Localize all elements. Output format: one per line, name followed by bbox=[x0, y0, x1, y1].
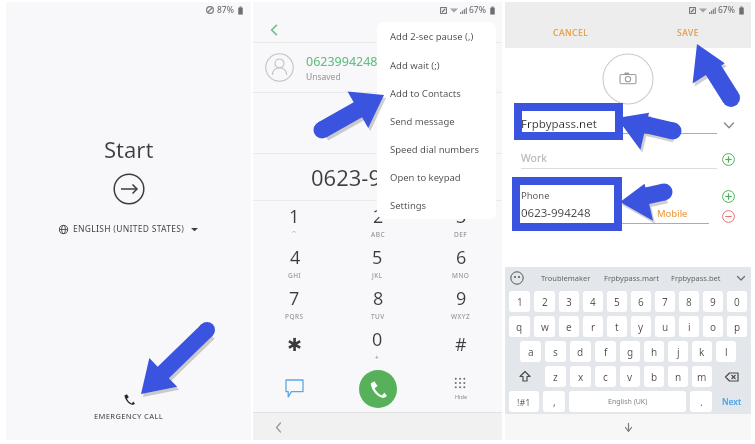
button[interactable]: Open to keypad bbox=[377, 163, 496, 191]
button[interactable]: u bbox=[655, 316, 675, 337]
staticText: 8 bbox=[686, 295, 692, 309]
button[interactable]: Expand bbox=[719, 115, 739, 135]
button[interactable]: !#1 bbox=[509, 391, 539, 412]
button[interactable]: e bbox=[559, 316, 579, 337]
button[interactable]: o bbox=[703, 316, 723, 337]
button[interactable]: s bbox=[545, 341, 566, 362]
button[interactable]: r bbox=[583, 316, 603, 337]
button[interactable]: 0 bbox=[727, 291, 747, 312]
button[interactable]: y bbox=[631, 316, 651, 337]
staticText: q bbox=[516, 320, 523, 334]
button[interactable]: 2 bbox=[336, 201, 419, 242]
button[interactable]: l bbox=[716, 341, 736, 362]
button[interactable]: # bbox=[419, 324, 502, 365]
staticText: g bbox=[627, 345, 634, 359]
button[interactable]: 1 bbox=[253, 201, 336, 242]
button[interactable]: 4 bbox=[583, 291, 603, 312]
button[interactable]: Remove bbox=[719, 207, 737, 225]
button[interactable]: Send message bbox=[253, 365, 336, 412]
staticText: u bbox=[662, 320, 669, 334]
button[interactable]: 7 bbox=[253, 283, 336, 324]
button[interactable]: ENGLISH (UNITED STATES) bbox=[55, 220, 202, 238]
button[interactable]: 9 bbox=[703, 291, 723, 312]
button[interactable]: Next bbox=[714, 389, 749, 414]
staticText: , bbox=[553, 395, 556, 409]
staticText: Frpbypass.mart bbox=[604, 273, 659, 283]
button[interactable]: Add bbox=[719, 150, 737, 168]
button[interactable]: CANCEL bbox=[549, 23, 593, 43]
button[interactable]: Backspace bbox=[716, 366, 747, 387]
button[interactable]: Add photo bbox=[602, 53, 654, 105]
button[interactable]: i bbox=[679, 316, 699, 337]
button[interactable]: Shift bbox=[509, 366, 541, 387]
button[interactable]: c bbox=[595, 366, 616, 387]
button[interactable]: English (UK) bbox=[569, 391, 686, 412]
button[interactable]: 1 bbox=[509, 291, 530, 312]
button[interactable]: 0 bbox=[336, 324, 419, 365]
button[interactable]: 5 bbox=[336, 242, 419, 283]
staticText: EMERGENCY CALL bbox=[94, 411, 164, 421]
button[interactable]: 8 bbox=[336, 283, 419, 324]
button[interactable]: j bbox=[668, 341, 688, 362]
button[interactable]: 7 bbox=[655, 291, 675, 312]
staticText: 7 bbox=[289, 286, 300, 311]
staticText: Speed dial numbers bbox=[390, 143, 479, 156]
button[interactable]: d bbox=[570, 341, 591, 362]
staticText: Next bbox=[722, 396, 742, 408]
button[interactable]: 8 bbox=[679, 291, 699, 312]
button[interactable]: Send message bbox=[377, 107, 496, 135]
button[interactable]: 6 bbox=[419, 242, 502, 283]
staticText: s bbox=[553, 345, 558, 359]
button[interactable]: ✱ bbox=[253, 324, 336, 365]
button[interactable]: t bbox=[607, 316, 627, 337]
button[interactable]: Voice input bbox=[510, 271, 524, 285]
button[interactable]: EMERGENCY CALL bbox=[94, 394, 164, 421]
staticText: 4 bbox=[290, 245, 301, 270]
button[interactable]: Hide keypad bbox=[419, 365, 502, 412]
button[interactable]: a bbox=[520, 341, 541, 362]
button[interactable]: Mobile bbox=[657, 207, 688, 220]
button[interactable]: Add bbox=[719, 187, 737, 205]
staticText: 0 bbox=[734, 295, 740, 309]
button[interactable]: Call bbox=[359, 370, 397, 408]
button[interactable]: . bbox=[690, 391, 712, 412]
button[interactable]: p bbox=[727, 316, 747, 337]
button[interactable]: Back bbox=[263, 19, 285, 41]
button[interactable]: 5 bbox=[607, 291, 627, 312]
staticText: 5 bbox=[372, 245, 383, 270]
button[interactable]: h bbox=[644, 341, 664, 362]
button[interactable]: m bbox=[692, 366, 712, 387]
button[interactable]: Hide keyboard bbox=[620, 419, 636, 435]
button[interactable]: g bbox=[620, 341, 640, 362]
button[interactable]: Add 2-sec pause (,) bbox=[377, 22, 496, 51]
button[interactable]: b bbox=[644, 366, 664, 387]
staticText: d bbox=[577, 345, 584, 359]
staticText: Hide bbox=[455, 393, 467, 400]
button[interactable]: Add wait (;) bbox=[377, 51, 496, 79]
button[interactable]: SAVE bbox=[673, 23, 703, 43]
button[interactable]: 6 bbox=[631, 291, 651, 312]
button[interactable]: Speed dial numbers bbox=[377, 135, 496, 163]
button[interactable]: f bbox=[595, 341, 616, 362]
button[interactable]: Settings bbox=[377, 191, 496, 219]
button[interactable]: k bbox=[692, 341, 712, 362]
button[interactable]: Back bbox=[269, 418, 287, 436]
button[interactable]: 3 bbox=[559, 291, 579, 312]
button[interactable]: n bbox=[668, 366, 688, 387]
staticText: 3 bbox=[566, 295, 572, 309]
button[interactable]: w bbox=[534, 316, 555, 337]
button[interactable]: , bbox=[543, 391, 565, 412]
button[interactable]: v bbox=[620, 366, 640, 387]
staticText: 0623994248 bbox=[306, 53, 378, 70]
button[interactable]: 4 bbox=[253, 242, 336, 283]
button[interactable]: q bbox=[509, 316, 530, 337]
staticText: Add wait (;) bbox=[390, 59, 440, 72]
button[interactable]: Add to Contacts bbox=[377, 79, 496, 107]
button[interactable]: 3 bbox=[419, 201, 502, 242]
staticText: i bbox=[688, 320, 691, 334]
button[interactable]: Start bbox=[113, 173, 145, 205]
button[interactable]: 2 bbox=[534, 291, 555, 312]
button[interactable]: z bbox=[545, 366, 566, 387]
button[interactable]: x bbox=[570, 366, 591, 387]
button[interactable]: 9 bbox=[419, 283, 502, 324]
